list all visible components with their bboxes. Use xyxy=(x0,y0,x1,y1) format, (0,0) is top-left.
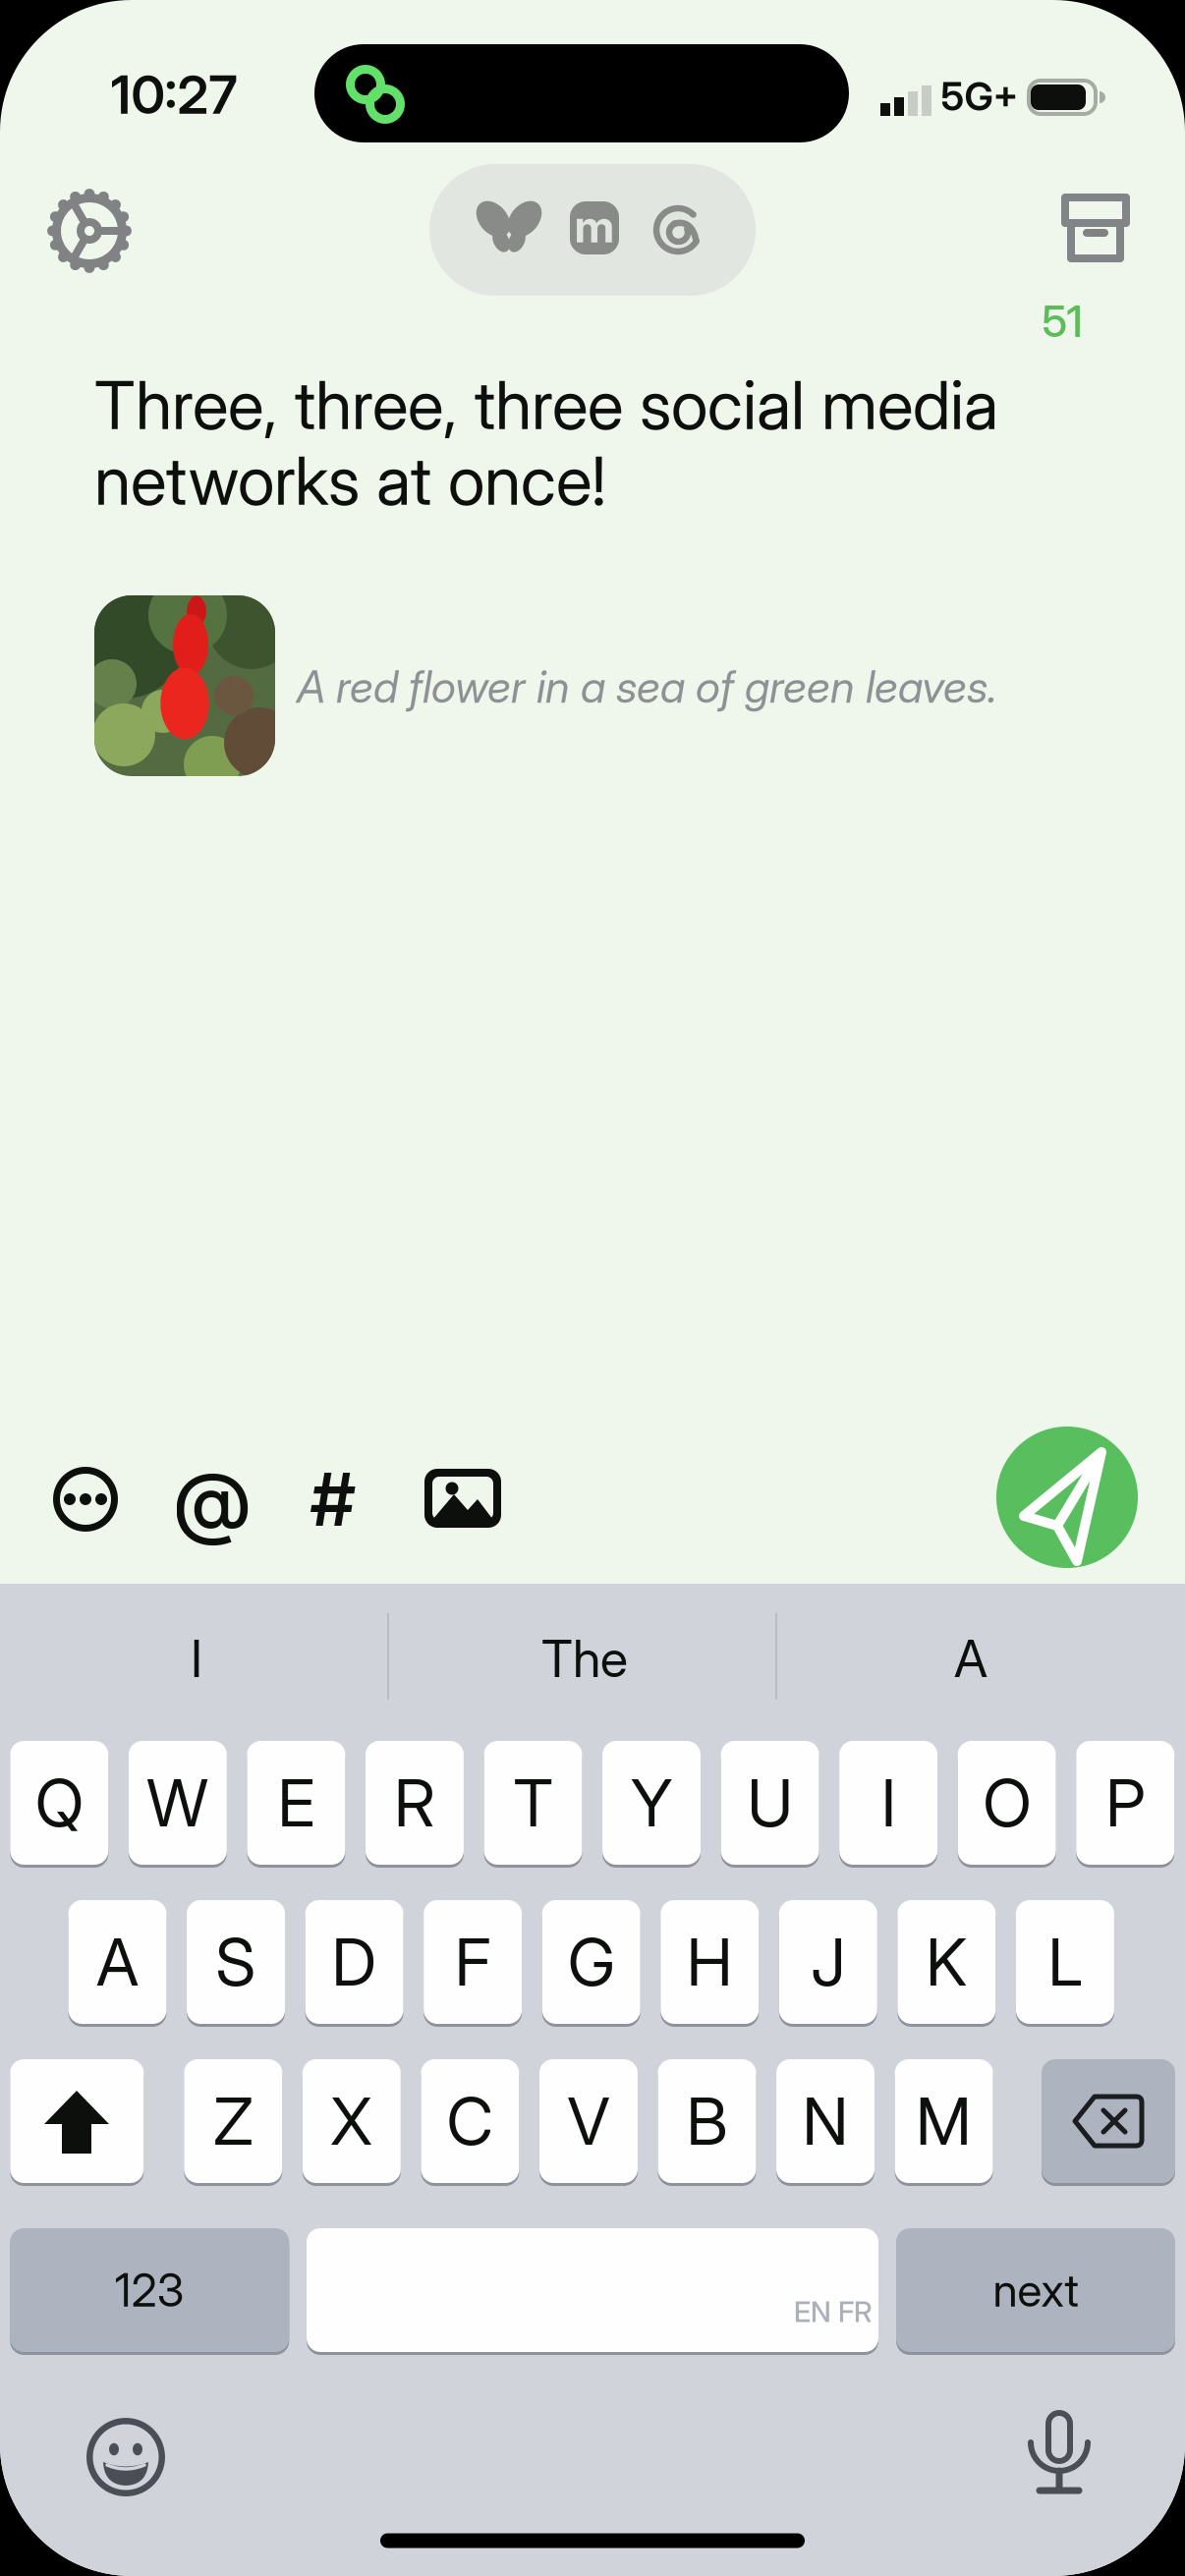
staticText: O xyxy=(983,1764,1031,1842)
staticText: 123 xyxy=(115,2263,185,2318)
button[interactable]: X xyxy=(303,2057,401,2185)
button[interactable]: A xyxy=(823,1609,1118,1708)
button[interactable]: D xyxy=(305,1898,403,2026)
button[interactable]: U xyxy=(721,1739,819,1867)
button[interactable]: V xyxy=(539,2057,638,2185)
button[interactable] xyxy=(424,1469,501,1528)
staticText: B xyxy=(686,2082,728,2160)
button[interactable] xyxy=(1042,2057,1175,2185)
staticText: Y xyxy=(631,1764,672,1842)
button[interactable]: m xyxy=(565,196,624,261)
staticText: R xyxy=(394,1764,435,1842)
button[interactable]: I xyxy=(49,1609,344,1708)
staticText: m xyxy=(574,199,615,253)
button[interactable]: J xyxy=(779,1898,877,2026)
button[interactable]: R xyxy=(365,1739,464,1867)
button[interactable]: P xyxy=(1076,1739,1174,1867)
button[interactable] xyxy=(85,2416,167,2498)
staticText: C xyxy=(446,2082,494,2160)
button[interactable]: I xyxy=(839,1739,937,1867)
staticText: I xyxy=(881,1764,896,1842)
button[interactable]: T xyxy=(484,1739,582,1867)
button[interactable]: H xyxy=(660,1898,759,2026)
staticText: Q xyxy=(35,1764,83,1842)
staticText: A red flower in a sea of green leaves. xyxy=(297,660,997,713)
staticText: F xyxy=(455,1923,491,2001)
staticText: N xyxy=(802,2082,848,2160)
button[interactable] xyxy=(475,195,543,263)
staticText: X xyxy=(331,2082,373,2160)
staticText: K xyxy=(926,1923,967,2001)
staticText: H xyxy=(687,1923,733,2001)
staticText: V xyxy=(567,2082,610,2160)
staticText: A xyxy=(96,1923,139,2001)
staticText: @ xyxy=(173,1454,251,1549)
staticText: Z xyxy=(214,2082,253,2160)
button[interactable] xyxy=(45,187,134,275)
staticText: A xyxy=(954,1627,987,1689)
button[interactable]: N xyxy=(776,2057,875,2185)
button[interactable] xyxy=(649,198,707,259)
staticText: L xyxy=(1048,1923,1082,2001)
button[interactable] xyxy=(1058,191,1133,265)
staticText: 10:27 xyxy=(111,62,237,126)
staticText: W xyxy=(147,1764,209,1842)
button[interactable]: Q xyxy=(10,1739,108,1867)
staticText: networks at once! xyxy=(94,440,606,521)
button[interactable]: L xyxy=(1016,1898,1114,2026)
button[interactable] xyxy=(1029,2410,1090,2500)
button[interactable]: Z xyxy=(184,2057,282,2185)
button[interactable]: The xyxy=(437,1609,732,1708)
button[interactable]: B xyxy=(658,2057,756,2185)
staticText: 51 xyxy=(1042,295,1082,347)
button[interactable]: W xyxy=(129,1739,227,1867)
staticText: next xyxy=(993,2263,1078,2318)
button[interactable]: G xyxy=(542,1898,640,2026)
staticText: M xyxy=(916,2082,972,2160)
staticText: The xyxy=(541,1627,628,1689)
staticText: P xyxy=(1106,1764,1145,1842)
button[interactable]: @ xyxy=(173,1462,252,1540)
button[interactable] xyxy=(307,2226,878,2354)
button[interactable] xyxy=(996,1427,1138,1568)
button[interactable]: C xyxy=(421,2057,519,2185)
button[interactable]: A xyxy=(68,1898,167,2026)
staticText: D xyxy=(332,1923,377,2001)
staticText: G xyxy=(568,1923,615,2001)
button[interactable] xyxy=(94,595,275,776)
button[interactable]: K xyxy=(897,1898,996,2026)
staticText: J xyxy=(811,1923,845,2001)
button[interactable] xyxy=(10,2057,144,2185)
staticText: U xyxy=(747,1764,793,1842)
staticText: S xyxy=(216,1923,256,2001)
button[interactable] xyxy=(53,1467,118,1532)
staticText: EN FR xyxy=(794,2295,873,2329)
button[interactable]: # xyxy=(294,1460,372,1539)
button[interactable]: M xyxy=(895,2057,993,2185)
button[interactable]: E xyxy=(247,1739,345,1867)
button[interactable]: F xyxy=(424,1898,522,2026)
staticText: E xyxy=(277,1764,315,1842)
staticText: 5G+ xyxy=(941,73,1018,120)
button[interactable]: Y xyxy=(602,1739,701,1867)
button[interactable]: S xyxy=(187,1898,285,2026)
button[interactable]: next xyxy=(896,2226,1175,2354)
staticText: T xyxy=(513,1764,553,1842)
staticText: I xyxy=(191,1627,202,1689)
button[interactable]: 123 xyxy=(10,2226,289,2354)
staticText: # xyxy=(310,1455,356,1543)
staticText: Three, three, three social media xyxy=(94,364,998,445)
button[interactable]: O xyxy=(958,1739,1056,1867)
